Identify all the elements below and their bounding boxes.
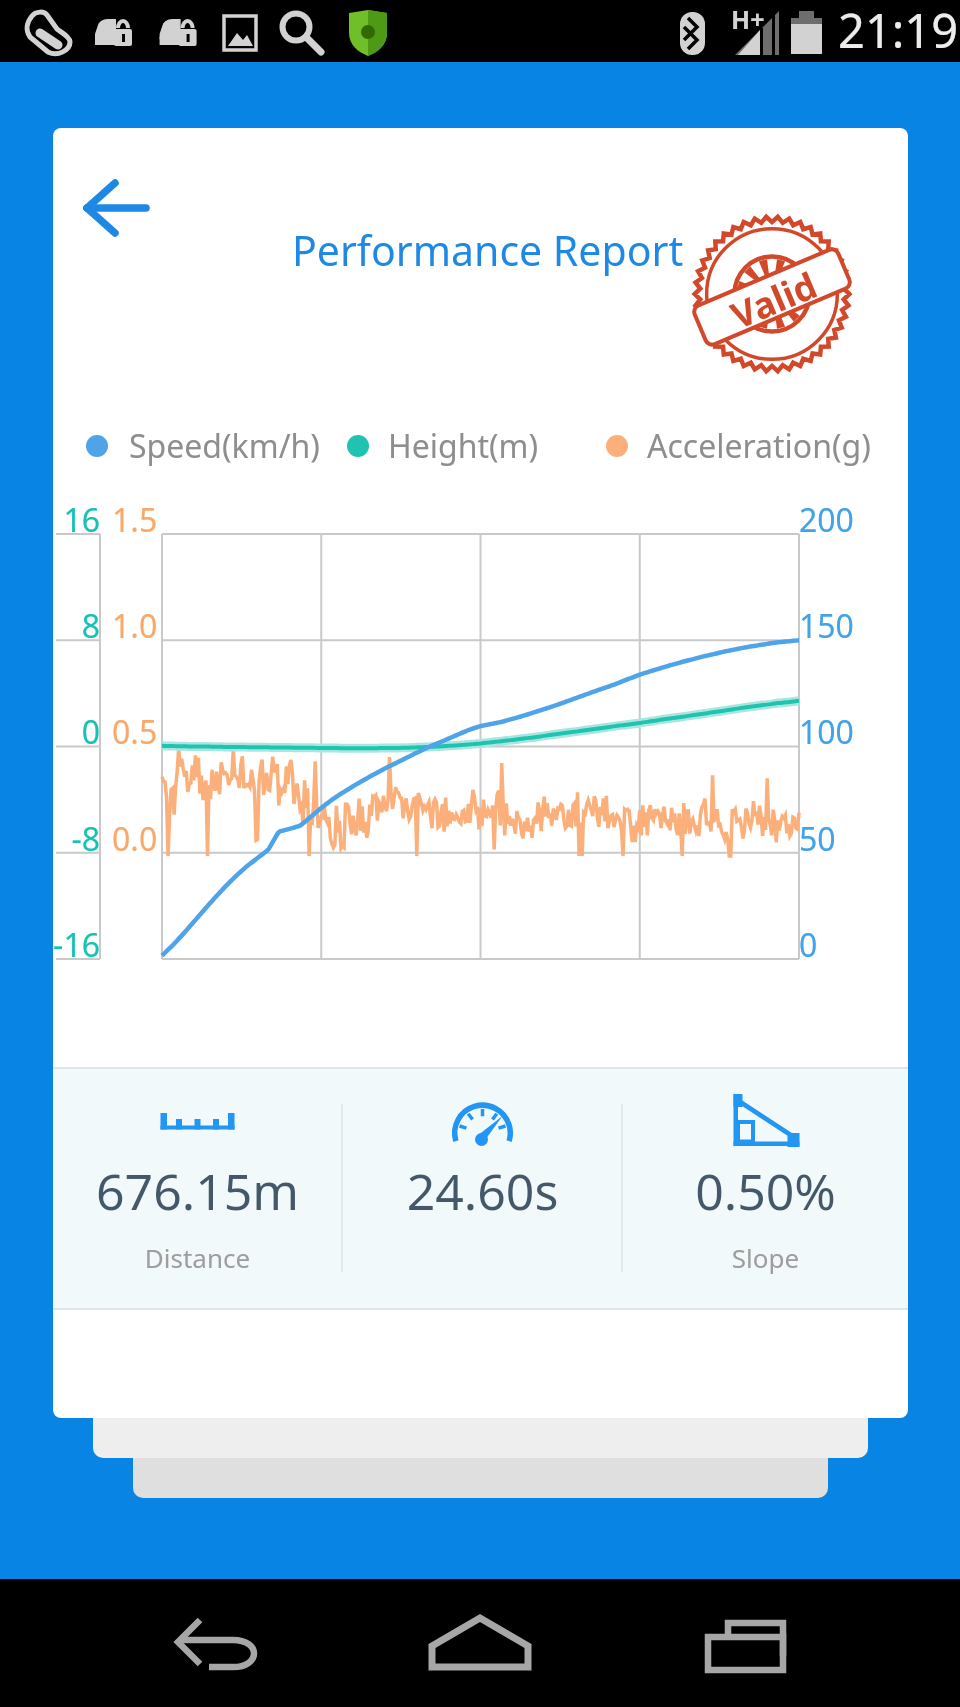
staticText: 1.5 bbox=[112, 498, 202, 542]
staticText: Height(m) bbox=[388, 424, 539, 468]
staticText: Performance Report bbox=[292, 222, 684, 278]
staticText: 1.0 bbox=[112, 604, 202, 648]
button[interactable]: 676.15m bbox=[53, 1069, 342, 1308]
staticText: 0 bbox=[53, 710, 100, 754]
staticText: 16 bbox=[53, 498, 100, 542]
staticText: 200 bbox=[799, 498, 899, 542]
staticText: Slope bbox=[623, 1240, 908, 1275]
staticText: -16 bbox=[53, 923, 100, 967]
staticText: 8 bbox=[53, 604, 100, 648]
staticText: 0.5 bbox=[112, 710, 202, 754]
staticText: 50 bbox=[799, 817, 899, 861]
staticText: H+ bbox=[731, 2, 765, 36]
staticText: Valid bbox=[723, 260, 822, 333]
staticText: Speed(km/h) bbox=[129, 424, 320, 468]
staticText: 24.60s bbox=[343, 1157, 622, 1225]
button[interactable]: Back bbox=[165, 1588, 275, 1698]
button[interactable]: Back bbox=[75, 170, 179, 274]
staticText: 150 bbox=[799, 604, 899, 648]
staticText: 676.15m bbox=[53, 1157, 342, 1225]
staticText: 0 bbox=[799, 923, 899, 967]
staticText: 0.0 bbox=[112, 817, 202, 861]
staticText: Distance bbox=[53, 1240, 342, 1275]
button[interactable]: 0.50% bbox=[623, 1069, 908, 1308]
staticText: Acceleration(g) bbox=[647, 424, 871, 468]
button[interactable]: 24.60s bbox=[343, 1069, 622, 1308]
staticText: 0.50% bbox=[623, 1157, 908, 1225]
staticText: -8 bbox=[53, 817, 100, 861]
button[interactable]: Home bbox=[425, 1588, 535, 1698]
staticText: 21:19 bbox=[838, 0, 959, 60]
staticText: 100 bbox=[799, 710, 899, 754]
button[interactable]: Recents bbox=[698, 1588, 808, 1698]
